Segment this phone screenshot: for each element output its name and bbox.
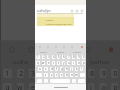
button[interactable]: 4: [40, 68, 48, 78]
button[interactable]: 2: [17, 68, 24, 78]
button[interactable]: w: [42, 61, 45, 65]
button[interactable]: e: [47, 61, 50, 65]
staticText: sudhas: [73, 50, 82, 53]
button[interactable]: a: [38, 67, 42, 71]
button[interactable]: Sudha: [40, 54, 80, 66]
button[interactable]: b: [65, 73, 68, 77]
button[interactable]: t: [57, 61, 60, 65]
staticText: Sudha: [46, 18, 54, 21]
staticText: y: [66, 83, 71, 90]
button[interactable]: u: [67, 61, 70, 65]
button[interactable]: Keyboard tool: [80, 43, 92, 54]
button[interactable]: 8: [88, 68, 95, 78]
button[interactable]: 1: [36, 55, 40, 59]
button[interactable]: 4: [52, 55, 55, 59]
button[interactable]: Keyboard tool: [69, 44, 74, 49]
button[interactable]: ?123: [36, 79, 42, 83]
button[interactable]: p: [82, 61, 85, 65]
button[interactable]: x: [50, 73, 53, 77]
button[interactable]: 8: [72, 55, 75, 59]
button[interactable]: t: [52, 83, 59, 90]
button[interactable]: w: [17, 83, 24, 90]
button[interactable]: c: [55, 73, 58, 77]
button[interactable]: 7: [67, 55, 70, 59]
button[interactable]: Action: [74, 8, 79, 13]
button[interactable]: d: [50, 67, 53, 71]
staticText: 9: [102, 68, 106, 78]
button[interactable]: Action: [79, 8, 84, 13]
staticText: w: [42, 61, 45, 65]
button[interactable]: i: [72, 61, 75, 65]
button[interactable]: u: [76, 83, 83, 90]
button[interactable]: 9: [77, 55, 80, 59]
button[interactable]: sudhas: [69, 49, 86, 54]
button[interactable]: z: [44, 73, 48, 77]
staticText: sudha.test@gmail.com: [46, 22, 72, 25]
button[interactable]: s: [44, 67, 48, 71]
button[interactable]: sudhas: [80, 54, 120, 66]
staticText: 4: [53, 55, 55, 59]
button[interactable]: 0: [82, 55, 85, 59]
button[interactable]: l: [80, 67, 83, 71]
button[interactable]: .: [72, 79, 76, 83]
button[interactable]: q: [3, 83, 12, 90]
button[interactable]: 3: [47, 55, 50, 59]
staticText: b: [66, 73, 68, 77]
button[interactable]: sudha: [0, 54, 40, 66]
button[interactable]: o: [99, 83, 106, 90]
staticText: x: [51, 73, 53, 77]
button[interactable]: sudha: [35, 49, 52, 54]
button[interactable]: 0: [111, 68, 118, 78]
button[interactable]: More options: [79, 44, 84, 49]
button[interactable]: ,: [44, 79, 48, 83]
button[interactable]: 9: [99, 68, 106, 78]
button[interactable]: r: [52, 61, 55, 65]
button[interactable]: 7: [76, 68, 83, 78]
button[interactable]: r: [40, 83, 48, 90]
button[interactable]: m: [75, 73, 78, 77]
button[interactable]: 6: [62, 55, 65, 59]
button[interactable]: p: [111, 83, 118, 90]
button[interactable]: 5: [57, 55, 60, 59]
button[interactable]: e: [29, 83, 36, 90]
button[interactable]: v: [60, 73, 63, 77]
button[interactable]: y: [64, 83, 71, 90]
button[interactable]: Keyboard tool: [24, 43, 36, 54]
button[interactable]: Action: [69, 8, 74, 13]
button[interactable]: f: [55, 67, 58, 71]
button[interactable]: More options: [104, 43, 116, 54]
staticText: o: [102, 83, 106, 90]
button[interactable]: q: [36, 61, 40, 65]
button[interactable]: i: [88, 83, 95, 90]
button[interactable]: h: [65, 67, 68, 71]
button[interactable]: g: [60, 67, 63, 71]
button[interactable]: Sudha: [37, 14, 74, 26]
button[interactable]: 6: [64, 68, 71, 78]
button[interactable]: 5: [52, 68, 59, 78]
button[interactable]: Keyboard tool: [43, 43, 55, 54]
staticText: u: [68, 61, 70, 65]
staticText: c: [56, 73, 58, 77]
button[interactable]: y: [62, 61, 65, 65]
button[interactable]: 3: [29, 68, 36, 78]
staticText: l: [81, 67, 82, 71]
button[interactable]: Sudha: [52, 49, 69, 54]
button[interactable]: k: [75, 67, 78, 71]
button[interactable]: Keyboard tool: [45, 44, 50, 49]
button[interactable]: Backspace: [80, 73, 85, 77]
button[interactable]: j: [70, 67, 73, 71]
button[interactable]: o: [77, 61, 80, 65]
button[interactable]: n: [70, 73, 73, 77]
button[interactable]: Keyboard tool: [53, 44, 58, 49]
staticText: sudha: [12, 57, 29, 64]
button[interactable]: 2: [42, 55, 45, 59]
button[interactable]: Keyboard tool: [37, 44, 42, 49]
button[interactable]: Keyboard tool: [62, 43, 73, 54]
button[interactable]: Keyboard tool: [61, 44, 66, 49]
staticText: e: [31, 83, 36, 90]
button[interactable]: 1: [3, 68, 12, 78]
